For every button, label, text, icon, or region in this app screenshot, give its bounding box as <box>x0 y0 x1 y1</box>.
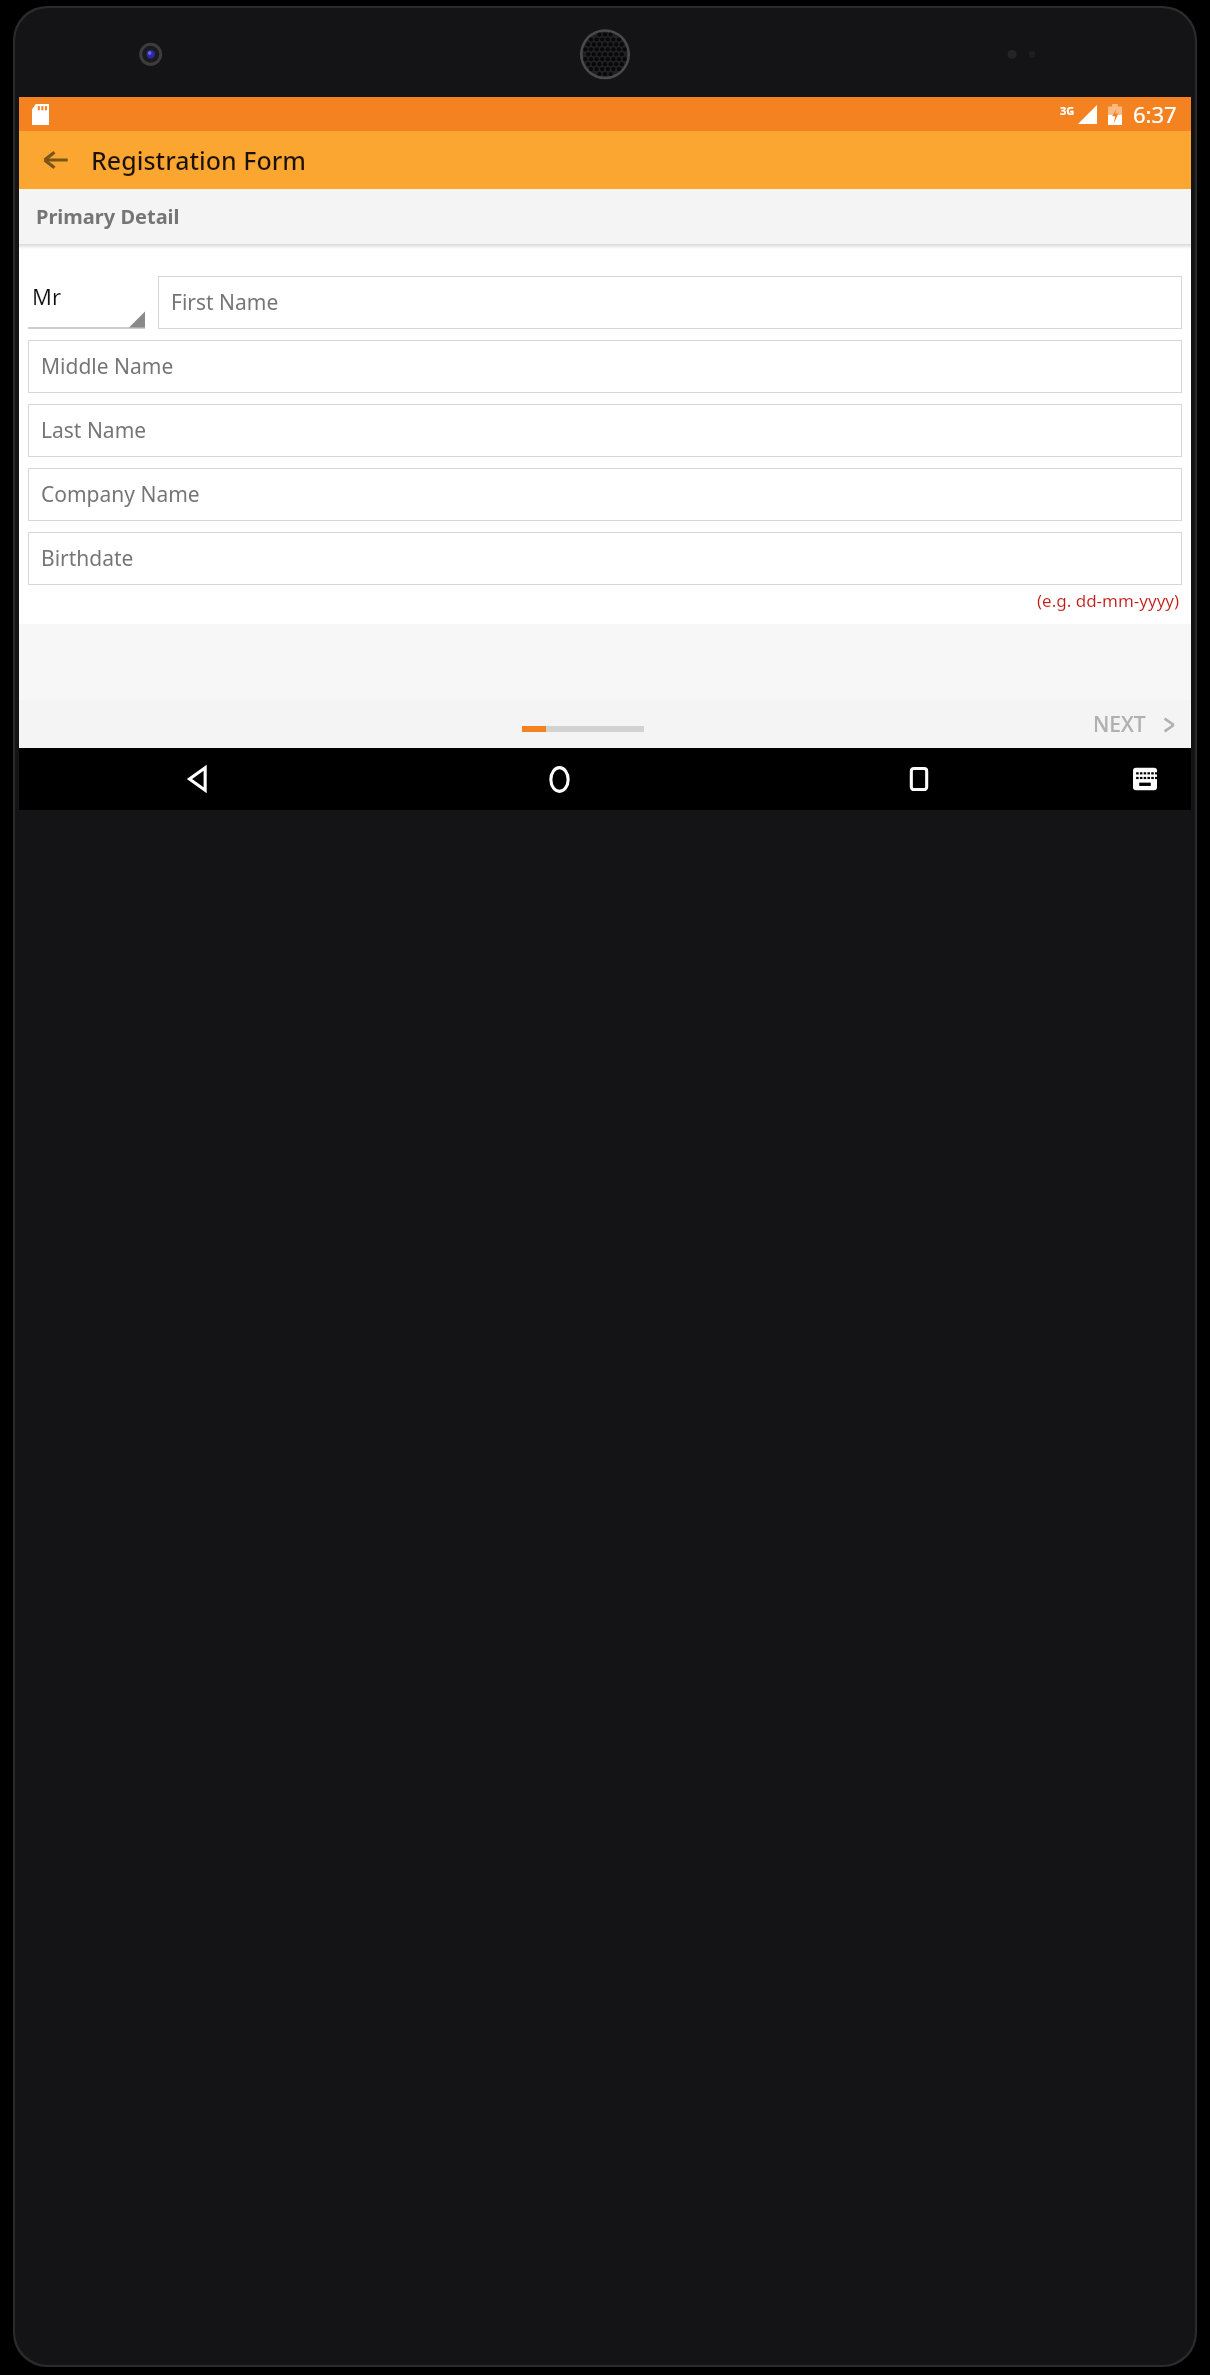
staticText: First Name <box>171 288 279 317</box>
staticText: Company Name <box>41 480 200 509</box>
button[interactable]: Company Name <box>28 468 1182 521</box>
button[interactable]: Recents <box>739 748 1099 810</box>
staticText: 6:37 <box>1133 99 1177 129</box>
staticText: Middle Name <box>41 352 174 381</box>
staticText: NEXT <box>1093 710 1146 739</box>
button[interactable]: Back <box>33 137 79 183</box>
staticText: Birthdate <box>41 544 134 573</box>
button[interactable]: Middle Name <box>28 340 1182 393</box>
staticText: Mr <box>32 281 62 311</box>
button[interactable]: Keyboard <box>1099 748 1191 810</box>
button[interactable]: NEXT <box>1093 710 1181 739</box>
button[interactable]: First Name <box>158 276 1182 329</box>
staticText: Last Name <box>41 416 147 445</box>
button[interactable]: Back <box>19 748 379 810</box>
staticText: (e.g. dd-mm-yyyy) <box>1037 589 1180 612</box>
button[interactable]: Last Name <box>28 404 1182 457</box>
button[interactable]: Mr <box>28 276 145 329</box>
button[interactable]: Birthdate <box>28 532 1182 585</box>
button[interactable]: Home <box>379 748 739 810</box>
staticText: Primary Detail <box>36 203 180 230</box>
staticText: Registration Form <box>91 143 307 177</box>
staticText: 3G <box>1060 103 1075 118</box>
